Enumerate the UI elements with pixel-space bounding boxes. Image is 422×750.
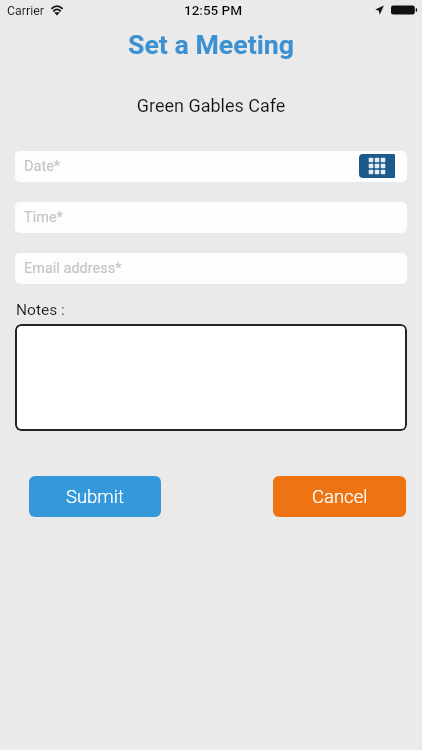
staticText: Notes : [16,301,65,319]
button[interactable]: Date* [15,151,407,182]
button[interactable]: Open calendar picker [359,154,395,178]
staticText: Cancel [312,486,368,508]
button[interactable]: Cancel [273,476,406,517]
other: Battery full [391,4,417,16]
button[interactable]: Submit [29,476,161,517]
button[interactable] [15,324,407,431]
staticText: Carrier [7,3,44,18]
staticText: Time* [24,209,63,226]
button[interactable]: Email address* [15,253,407,284]
staticText: Set a Meeting [0,29,422,60]
other: Location active [375,5,384,15]
button[interactable]: Time* [15,202,407,233]
staticText: 12:55 PM [2,2,422,18]
staticText: Green Gables Cafe [0,95,422,116]
staticText: Submit [66,486,124,508]
staticText: Date* [24,158,61,175]
staticText: Email address* [24,260,122,277]
other: Wi-Fi signal [49,4,65,15]
